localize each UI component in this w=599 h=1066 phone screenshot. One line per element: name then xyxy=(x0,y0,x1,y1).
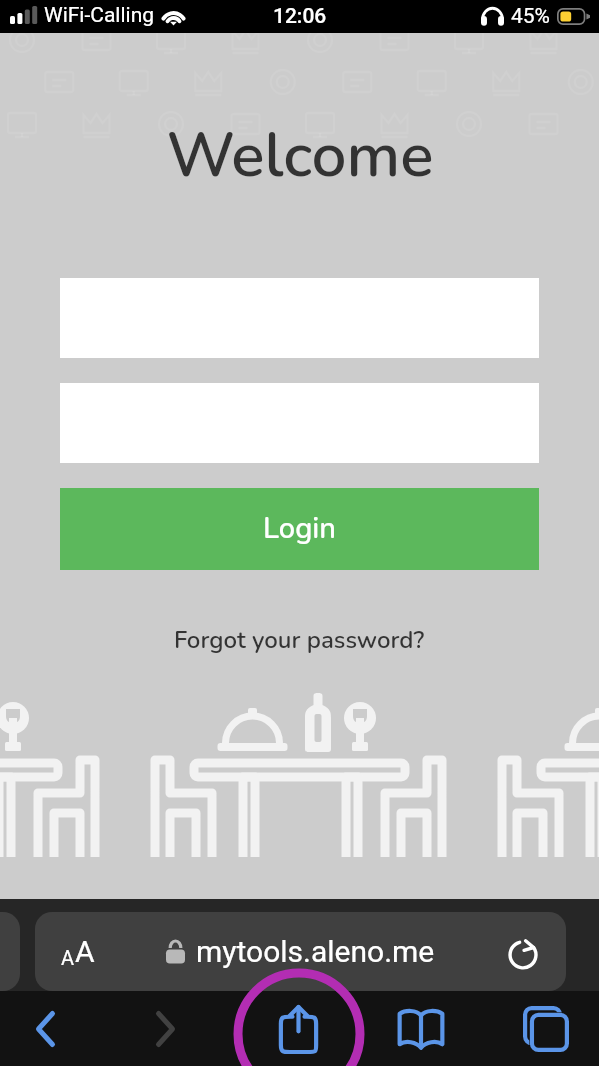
button[interactable]: Text size options xyxy=(35,912,121,991)
staticText: 12:06 xyxy=(273,4,327,29)
button[interactable]: Tabs xyxy=(480,991,599,1066)
staticText: A xyxy=(61,946,75,969)
button[interactable]: Forgot your password? xyxy=(174,624,425,657)
button[interactable]: Share xyxy=(240,991,360,1066)
staticText: 45% xyxy=(511,4,550,29)
staticText: WiFi-Calling xyxy=(44,3,155,28)
button[interactable]: Text size options xyxy=(35,912,566,991)
button[interactable]: Reload page xyxy=(480,912,566,991)
staticText: Login xyxy=(263,509,336,549)
staticText: Welcome xyxy=(166,113,434,198)
staticText: mytools.aleno.me xyxy=(196,934,435,969)
button[interactable]: Back xyxy=(0,991,110,1066)
staticText: Forgot your password? xyxy=(174,624,425,657)
button[interactable]: Forward xyxy=(110,991,240,1066)
staticText: A xyxy=(75,934,95,969)
button[interactable]: Login xyxy=(60,488,539,570)
button[interactable]: Bookmarks xyxy=(360,991,480,1066)
